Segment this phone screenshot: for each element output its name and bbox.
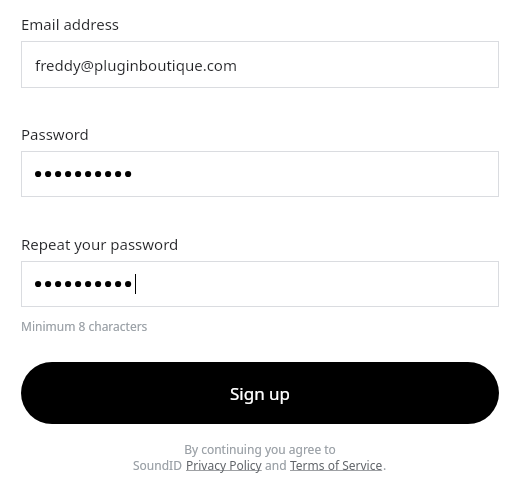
staticText: Repeat your password bbox=[21, 234, 179, 254]
staticText: and bbox=[262, 457, 290, 473]
button[interactable]: Terms of Service bbox=[290, 457, 383, 473]
button[interactable]: Privacy Policy bbox=[186, 457, 262, 473]
staticText: . bbox=[383, 457, 387, 473]
button[interactable]: Sign up bbox=[21, 362, 499, 424]
button[interactable] bbox=[21, 151, 499, 197]
staticText: Password bbox=[21, 124, 89, 144]
staticText: Privacy Policy bbox=[186, 457, 262, 473]
staticText: Sign up bbox=[230, 382, 291, 405]
staticText: Terms of Service bbox=[290, 457, 383, 473]
button[interactable]: freddy@pluginboutique.com bbox=[21, 41, 499, 88]
staticText: Minimum 8 characters bbox=[21, 318, 148, 334]
staticText: Email address bbox=[21, 14, 120, 34]
staticText: freddy@pluginboutique.com bbox=[35, 55, 237, 75]
staticText: By continuing you agree to bbox=[184, 441, 336, 457]
button[interactable] bbox=[21, 261, 499, 307]
staticText: SoundID bbox=[133, 457, 186, 473]
